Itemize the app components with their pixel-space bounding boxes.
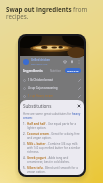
staticText: Milk + butter - Combine 3/4 cup milk wit…	[27, 142, 81, 154]
staticText: Half and half - Use equal parts for a li…	[27, 122, 81, 130]
staticText: Greek yogurt - Adds tang and creaminess;…	[27, 156, 81, 164]
staticText: 1 lb Chicken breast	[28, 78, 53, 82]
button[interactable]: 1 cup Heavy cream	[20, 92, 84, 100]
button[interactable]: Save	[70, 60, 74, 64]
staticText: 3.	[23, 142, 26, 146]
button[interactable]: 1 lb Chicken breast	[20, 76, 84, 84]
staticText: 4 cup Cajun seasoning	[28, 86, 58, 90]
staticText: Silken tofu - Blend until smooth for a v…	[27, 166, 81, 173]
staticText: Swap out ingredients from recipes.	[6, 5, 100, 21]
staticText: Substitutions	[23, 103, 52, 109]
button[interactable]: Make it fit	[65, 68, 81, 73]
other: Edit	[78, 87, 81, 90]
staticText: 5.	[23, 166, 26, 170]
staticText: Make it fit	[67, 69, 79, 72]
staticText: Ingredients	[23, 68, 43, 73]
staticText: 1 cup Heavy cream	[28, 94, 53, 98]
staticText: Here are some great substitutes for heav…	[23, 112, 81, 120]
staticText: 2.	[23, 132, 26, 136]
staticText: 1.	[23, 122, 26, 126]
button[interactable]: Favorite	[63, 60, 67, 64]
button[interactable]: More options	[77, 60, 81, 64]
button[interactable]: 4 cup Cajun seasoning	[20, 84, 84, 92]
other: Edit	[78, 95, 81, 98]
button[interactable]: Close	[77, 104, 81, 108]
staticText: Grilled chicken	[31, 58, 50, 62]
staticText: Nutrition	[50, 69, 62, 73]
button[interactable]: Author	[23, 59, 29, 65]
staticText: with garlic rice	[31, 62, 48, 65]
staticText: 4.	[23, 156, 26, 160]
staticText: Coconut cream - Great for a dairy-free a…	[27, 132, 81, 140]
other: Edit	[78, 79, 81, 82]
